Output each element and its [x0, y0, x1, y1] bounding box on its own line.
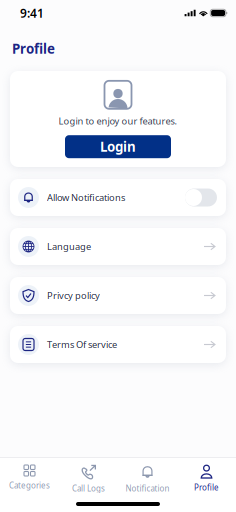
- staticText: Call Logs: [72, 483, 105, 494]
- button[interactable]: Language: [0, 228, 236, 265]
- button[interactable]: Allow Notifications: [0, 179, 236, 216]
- button[interactable]: Terms Of service: [0, 326, 236, 363]
- button[interactable]: Categories: [0, 457, 59, 493]
- staticText: Notification: [125, 483, 169, 494]
- staticText: Privcy policy: [47, 289, 100, 302]
- staticText: Language: [47, 240, 91, 253]
- button[interactable]: Profile: [177, 457, 236, 493]
- staticText: 9:41: [20, 5, 44, 21]
- staticText: Login: [100, 138, 136, 155]
- button[interactable]: Call Logs: [59, 457, 118, 493]
- button[interactable]: Login: [65, 135, 171, 158]
- staticText: Allow Notifications: [47, 191, 125, 204]
- staticText: Profile: [12, 40, 55, 57]
- staticText: Categories: [9, 480, 50, 491]
- staticText: Terms Of service: [47, 338, 117, 351]
- button[interactable]: Notification: [118, 457, 177, 493]
- staticText: Profile: [194, 482, 219, 493]
- button[interactable]: Privcy policy: [0, 277, 236, 314]
- staticText: Login to enjoy our features.: [58, 115, 177, 127]
